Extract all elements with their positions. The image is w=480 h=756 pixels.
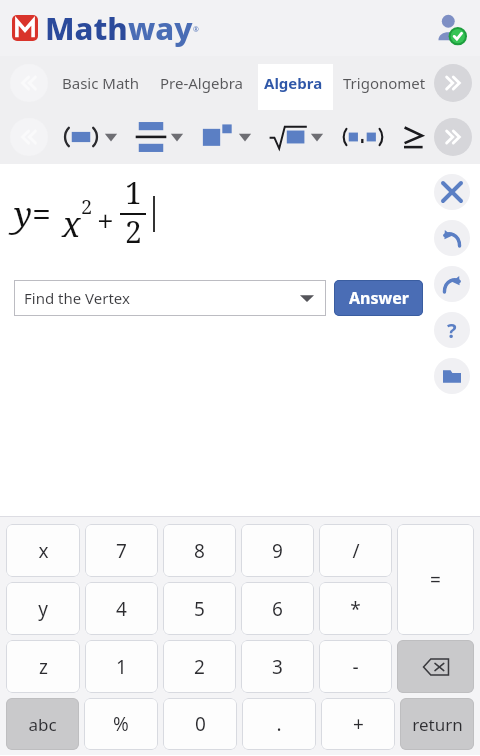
staticText: =: [430, 567, 441, 593]
staticText: Math: [45, 7, 128, 49]
staticText: .: [276, 711, 282, 737]
button[interactable]: Pre-Algebra: [158, 67, 245, 99]
staticText: 9: [272, 538, 283, 564]
staticText: 2: [81, 193, 93, 220]
staticText: 4: [116, 596, 127, 622]
staticText: %: [113, 711, 129, 737]
button[interactable]: +: [321, 698, 395, 750]
staticText: x: [38, 538, 49, 564]
button[interactable]: -: [319, 640, 392, 693]
staticText: =: [32, 191, 52, 237]
button[interactable]: y: [6, 582, 80, 635]
staticText: Basic Math: [62, 73, 140, 93]
staticText: 7: [116, 538, 127, 564]
button[interactable]: More options: [308, 122, 326, 152]
staticText: /: [352, 538, 360, 564]
button[interactable]: More options: [102, 122, 120, 152]
button[interactable]: 3: [241, 640, 314, 693]
staticText: 6: [272, 596, 283, 622]
button[interactable]: Math template: [60, 120, 102, 154]
button[interactable]: Scroll right: [434, 64, 472, 102]
staticText: 1: [125, 172, 142, 213]
button[interactable]: Math template: [268, 120, 308, 154]
button[interactable]: 8: [163, 524, 236, 577]
button[interactable]: *: [319, 582, 392, 635]
staticText: abc: [28, 713, 57, 736]
button[interactable]: /: [319, 524, 392, 577]
staticText: 0: [195, 711, 206, 737]
staticText: Algebra: [264, 73, 323, 93]
staticText: x: [62, 201, 81, 247]
button[interactable]: Undo: [434, 220, 470, 256]
button[interactable]: return: [400, 698, 474, 750]
button[interactable]: Scroll right: [434, 118, 472, 156]
button[interactable]: z: [6, 640, 80, 693]
staticText: Find the Vertex: [24, 288, 130, 308]
button[interactable]: Answer: [334, 280, 423, 316]
button[interactable]: 4: [85, 582, 158, 635]
staticText: -: [352, 654, 359, 680]
button[interactable]: 6: [241, 582, 314, 635]
button[interactable]: Algebra: [262, 67, 325, 99]
button[interactable]: Close: [434, 174, 470, 210]
staticText: return: [412, 713, 463, 736]
staticText: ?: [447, 317, 457, 344]
button[interactable]: 2: [163, 640, 236, 693]
button[interactable]: 5: [163, 582, 236, 635]
staticText: z: [39, 654, 48, 680]
button[interactable]: Saved: [434, 358, 470, 394]
button[interactable]: Help: [434, 312, 470, 348]
staticText: y: [38, 596, 48, 622]
button[interactable]: 7: [85, 524, 158, 577]
staticText: 1: [116, 654, 127, 680]
button[interactable]: x: [6, 524, 80, 577]
button[interactable]: Redo: [434, 266, 470, 302]
button[interactable]: .: [242, 698, 316, 750]
button[interactable]: 1: [85, 640, 158, 693]
staticText: 5: [194, 596, 205, 622]
button[interactable]: Trigonomet: [341, 67, 428, 99]
staticText: way: [128, 7, 193, 49]
button[interactable]: Math template: [134, 120, 168, 154]
button[interactable]: 0: [163, 698, 237, 750]
staticText: *: [350, 596, 361, 622]
button[interactable]: More options: [168, 122, 186, 152]
staticText: 8: [194, 538, 205, 564]
button[interactable]: More options: [236, 122, 254, 152]
button[interactable]: Backspace: [397, 640, 474, 693]
staticText: ®: [193, 25, 199, 35]
button[interactable]: Math template: [340, 120, 386, 154]
button[interactable]: Math template: [398, 120, 428, 154]
button[interactable]: Find the Vertex: [14, 280, 326, 316]
staticText: +: [353, 711, 364, 737]
staticText: 3: [272, 654, 283, 680]
staticText: 2: [125, 211, 142, 252]
button[interactable]: Math template: [200, 120, 236, 154]
button[interactable]: =: [397, 524, 474, 635]
button[interactable]: Account: [434, 11, 468, 45]
button[interactable]: Basic Math: [60, 67, 142, 99]
button[interactable]: abc: [6, 698, 79, 750]
staticText: 2: [194, 654, 205, 680]
staticText: Trigonomet: [343, 73, 426, 93]
button[interactable]: 9: [241, 524, 314, 577]
staticText: +: [97, 200, 114, 241]
staticText: Pre-Algebra: [160, 73, 243, 93]
staticText: Answer: [349, 287, 409, 309]
staticText: y: [14, 191, 32, 237]
button[interactable]: %: [84, 698, 158, 750]
